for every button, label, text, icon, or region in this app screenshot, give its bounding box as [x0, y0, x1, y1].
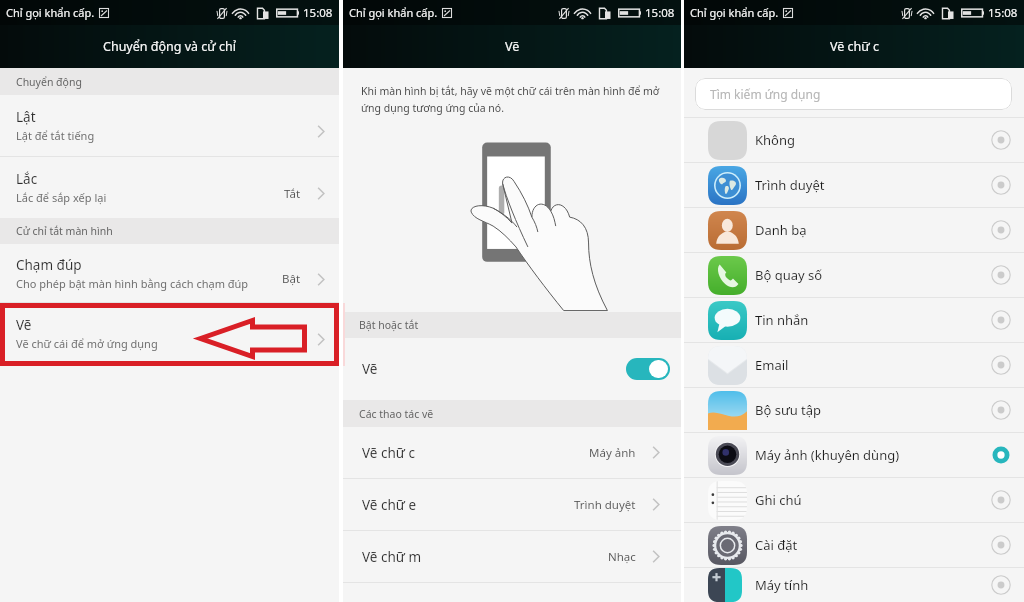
- staticText: Lật để tắt tiếng: [16, 128, 95, 143]
- staticText: Vẽ: [16, 316, 32, 334]
- staticText: Khi màn hình bị tắt, hãy vẽ một chữ cái …: [361, 84, 669, 115]
- staticText: Trình duyệt: [574, 497, 636, 513]
- staticText: Vẽ: [362, 360, 626, 378]
- button[interactable]: Vẽ chữ e: [343, 479, 681, 530]
- staticText: Vẽ chữ e: [362, 496, 416, 514]
- button[interactable]: Ghi chú: [684, 478, 1024, 522]
- staticText: Lật: [16, 108, 36, 126]
- button[interactable]: Lật: [0, 95, 339, 156]
- staticText: Vẽ chữ c: [830, 38, 879, 55]
- staticText: Trình duyệt: [755, 176, 991, 194]
- staticText: Nhạc: [608, 549, 636, 565]
- staticText: Ghi chú: [755, 491, 991, 509]
- button[interactable]: Chạm đúp: [0, 244, 339, 302]
- button[interactable]: Danh bạ: [684, 208, 1024, 252]
- staticText: Tìm kiếm ứng dụng: [710, 86, 821, 102]
- button[interactable]: Cài đặt: [684, 523, 1024, 567]
- staticText: Vẽ chữ m: [362, 548, 422, 566]
- staticText: Chạm đúp: [16, 256, 82, 274]
- button[interactable]: Vẽ: [0, 303, 339, 364]
- staticText: Bộ quay số: [755, 266, 991, 284]
- button[interactable]: Trình duyệt: [684, 163, 1024, 207]
- staticText: Tin nhắn: [755, 311, 991, 329]
- button[interactable]: Máy ảnh (khuyên dùng): [684, 433, 1024, 477]
- staticText: Máy tính: [755, 576, 991, 594]
- staticText: Vẽ chữ c: [362, 444, 415, 462]
- button[interactable]: Vẽ: [343, 338, 681, 400]
- staticText: Các thao tác vẽ: [359, 407, 434, 421]
- staticText: Chuyển động và cử chỉ: [103, 38, 236, 55]
- staticText: Bật hoặc tắt: [359, 318, 419, 332]
- staticText: Cho phép bật màn hình bằng cách chạm đúp: [16, 276, 249, 291]
- button[interactable]: Bộ quay số: [684, 253, 1024, 297]
- staticText: Chỉ gọi khẩn cấp.: [6, 5, 95, 20]
- staticText: Không: [755, 131, 991, 149]
- button[interactable]: Tin nhắn: [684, 298, 1024, 342]
- staticText: Vẽ chữ cái để mở ứng dụng: [16, 336, 158, 351]
- staticText: Vẽ: [505, 38, 520, 55]
- button[interactable]: Tìm kiếm ứng dụng: [695, 78, 1012, 110]
- button[interactable]: Vẽ chữ c: [343, 427, 681, 478]
- button[interactable]: Máy tính: [684, 568, 1024, 602]
- staticText: Tắt: [284, 186, 301, 202]
- button[interactable]: Email: [684, 343, 1024, 387]
- button[interactable]: Không: [684, 118, 1024, 162]
- staticText: Cài đặt: [755, 536, 991, 554]
- staticText: Bật: [282, 271, 301, 287]
- staticText: Email: [755, 356, 991, 374]
- button[interactable]: Bật hoặc tắt Vẽ: [626, 358, 670, 380]
- staticText: Chỉ gọi khẩn cấp.: [349, 5, 438, 20]
- staticText: Danh bạ: [755, 221, 991, 239]
- staticText: 15:08: [645, 5, 675, 21]
- staticText: 15:08: [988, 5, 1018, 21]
- staticText: Chỉ gọi khẩn cấp.: [690, 5, 779, 20]
- staticText: Lắc: [16, 170, 38, 188]
- staticText: Cử chỉ tắt màn hình: [16, 224, 113, 238]
- staticText: 15:08: [303, 5, 333, 21]
- button[interactable]: Lắc: [0, 157, 339, 218]
- button[interactable]: Vẽ chữ m: [343, 531, 681, 582]
- staticText: Lắc để sắp xếp lại: [16, 190, 107, 205]
- button[interactable]: Bộ sưu tập: [684, 388, 1024, 432]
- staticText: Máy ảnh (khuyên dùng): [755, 446, 991, 464]
- staticText: Chuyển động: [16, 75, 82, 89]
- staticText: Máy ảnh: [589, 445, 636, 461]
- staticText: Bộ sưu tập: [755, 401, 991, 419]
